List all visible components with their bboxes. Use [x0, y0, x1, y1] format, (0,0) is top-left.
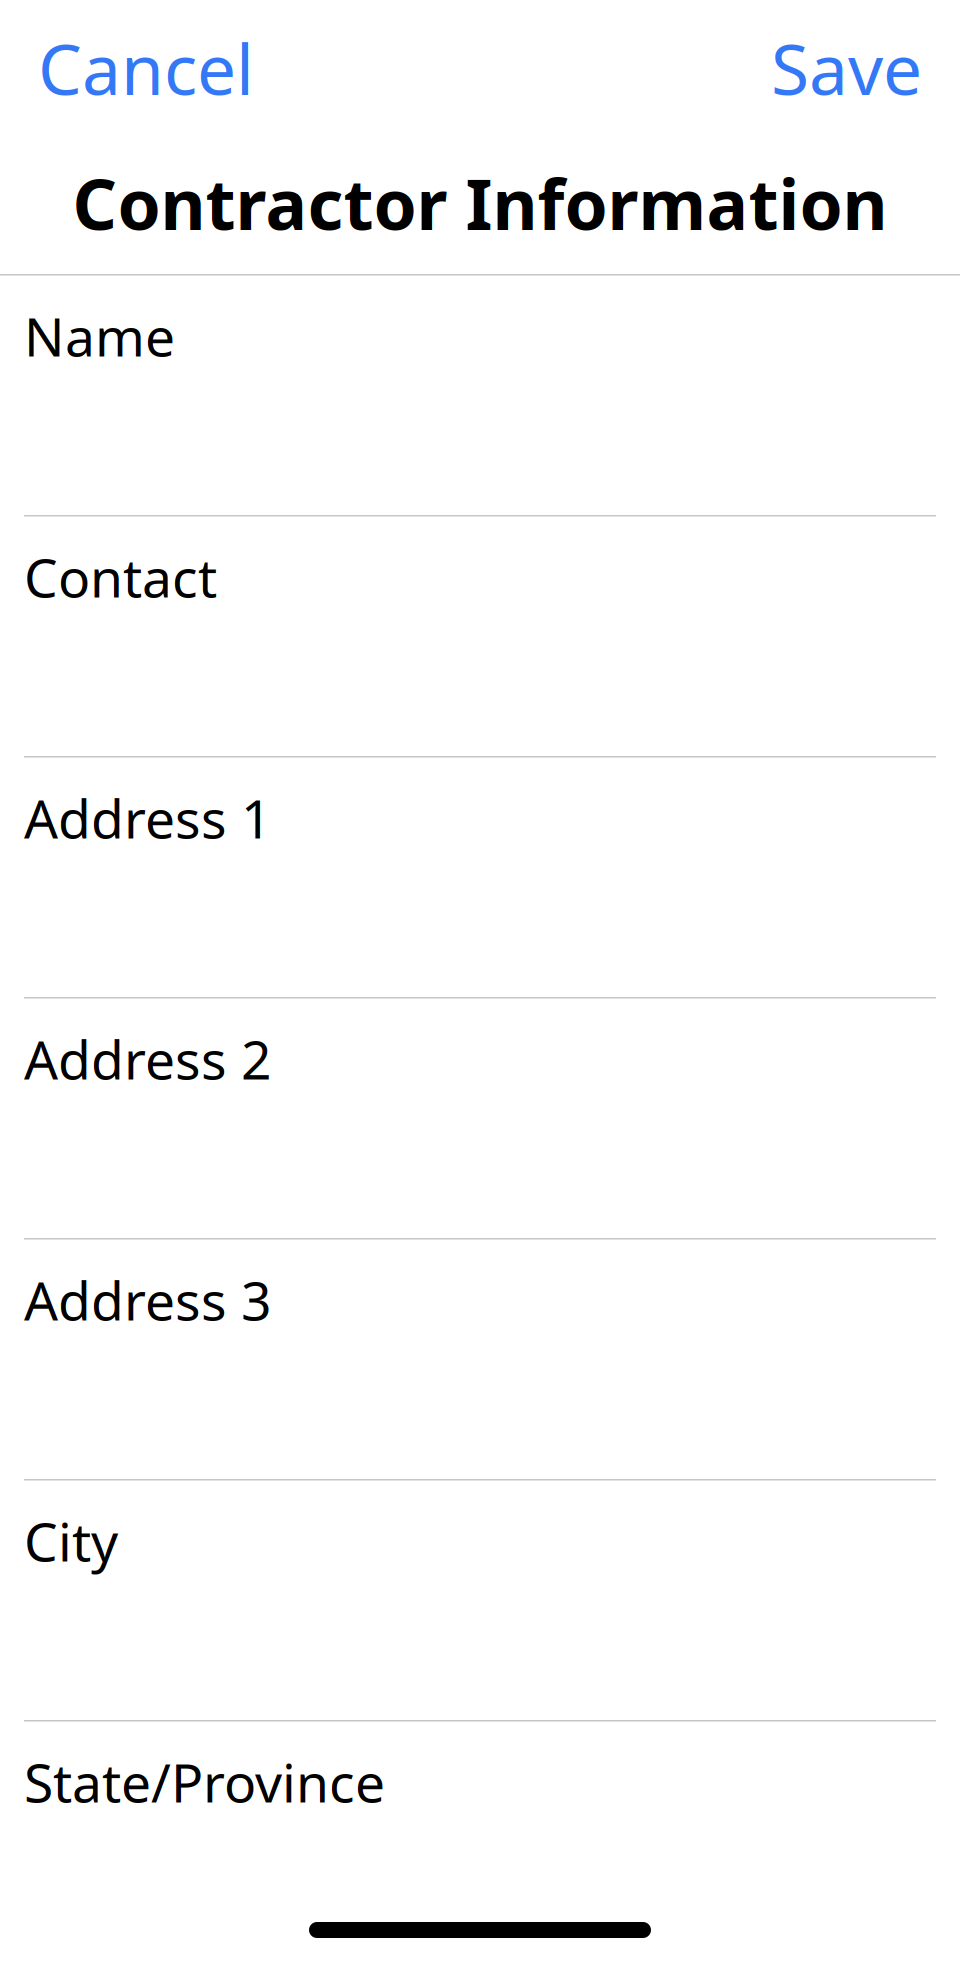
staticText: State/Province — [24, 1746, 385, 1817]
staticText: Contractor Information — [72, 157, 887, 249]
button[interactable]: Save — [771, 22, 922, 114]
button[interactable]: Address 3 — [0, 1239, 960, 1479]
staticText: Cancel — [38, 22, 254, 114]
staticText: Name — [24, 300, 175, 371]
button[interactable]: Address 2 — [0, 998, 960, 1238]
button[interactable]: Address 1 — [0, 757, 960, 997]
button[interactable]: Contact — [0, 516, 960, 756]
button[interactable]: Name — [0, 275, 960, 515]
button[interactable]: State/Province — [0, 1721, 960, 1961]
staticText: City — [24, 1505, 118, 1576]
staticText: Address 1 — [24, 782, 272, 853]
staticText: Address 2 — [24, 1023, 272, 1094]
staticText: Contact — [24, 541, 217, 612]
staticText: Save — [771, 22, 922, 114]
button[interactable]: Cancel — [38, 22, 254, 114]
button[interactable]: City — [0, 1480, 960, 1720]
staticText: Address 3 — [24, 1264, 272, 1335]
